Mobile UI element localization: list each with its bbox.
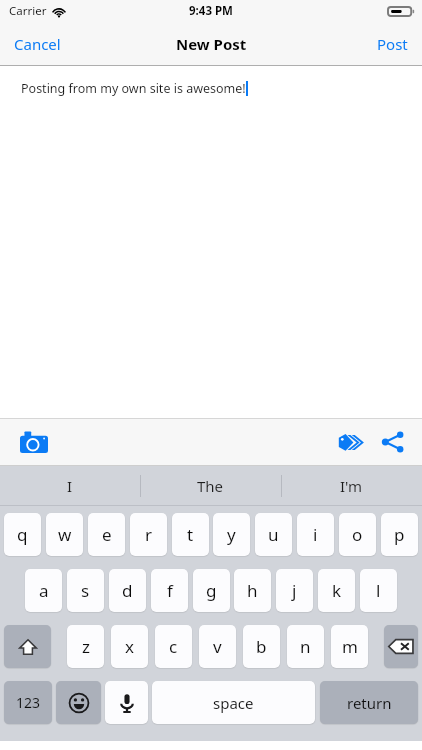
button[interactable]: l (360, 569, 397, 612)
button[interactable]: space (152, 681, 315, 724)
button[interactable]: z (67, 625, 104, 668)
button[interactable]: Dictation (105, 681, 148, 724)
staticText: d (122, 579, 133, 602)
button[interactable]: n (287, 625, 324, 668)
button[interactable]: Emoji (56, 681, 101, 724)
staticText: x (125, 635, 134, 658)
button[interactable]: c (155, 625, 192, 668)
staticText: s (81, 579, 90, 602)
button[interactable]: j (276, 569, 313, 612)
button[interactable]: b (243, 625, 280, 668)
button[interactable]: w (46, 513, 83, 556)
staticText: p (394, 523, 405, 546)
staticText: b (256, 635, 267, 658)
staticText: space (213, 693, 254, 713)
staticText: y (227, 523, 236, 546)
staticText: k (332, 579, 342, 602)
staticText: Posting from my own site is awesome! (21, 80, 246, 97)
button[interactable]: g (193, 569, 230, 612)
button[interactable]: Shift (4, 625, 51, 668)
staticText: a (39, 579, 49, 602)
staticText: g (206, 579, 217, 602)
staticText: New Post (176, 34, 247, 54)
button[interactable]: o (339, 513, 376, 556)
button[interactable]: x (111, 625, 148, 668)
staticText: e (102, 523, 112, 546)
staticText: q (17, 523, 28, 546)
button[interactable]: v (199, 625, 236, 668)
button[interactable]: Backspace (384, 625, 418, 668)
staticText: 123 (16, 693, 41, 712)
button[interactable]: 123 (4, 681, 52, 724)
button[interactable]: d (109, 569, 146, 612)
staticText: Post (377, 34, 408, 54)
button[interactable]: s (67, 569, 104, 612)
button[interactable]: Share (372, 421, 414, 463)
button[interactable]: m (331, 625, 368, 668)
staticText: c (169, 635, 178, 658)
button[interactable]: k (318, 569, 355, 612)
button[interactable]: Tags (330, 421, 372, 463)
staticText: l (376, 579, 381, 602)
button[interactable]: Posting from my own site is awesome! (0, 66, 422, 418)
button[interactable]: f (151, 569, 188, 612)
staticText: f (167, 579, 173, 602)
button[interactable]: return (320, 681, 418, 724)
button[interactable]: Add photo (12, 420, 56, 464)
staticText: o (352, 523, 363, 546)
button[interactable]: u (255, 513, 292, 556)
staticText: n (300, 635, 311, 658)
button[interactable]: I'm (281, 466, 422, 506)
staticText: r (145, 523, 153, 546)
button[interactable]: p (381, 513, 418, 556)
staticText: Cancel (14, 34, 61, 54)
staticText: i (313, 523, 318, 546)
button[interactable]: I (0, 466, 140, 506)
staticText: The (197, 476, 224, 496)
staticText: m (342, 635, 358, 658)
staticText: 9:43 PM (189, 3, 233, 19)
button[interactable]: y (213, 513, 250, 556)
button[interactable]: a (25, 569, 62, 612)
staticText: j (292, 579, 297, 602)
staticText: u (268, 523, 279, 546)
button[interactable]: t (172, 513, 209, 556)
staticText: z (82, 635, 90, 658)
staticText: v (213, 635, 222, 658)
button[interactable]: e (88, 513, 125, 556)
button[interactable]: i (297, 513, 334, 556)
button[interactable]: r (130, 513, 167, 556)
staticText: w (58, 523, 72, 546)
staticText: I (67, 476, 73, 496)
button[interactable]: Post (377, 22, 408, 66)
staticText: I'm (340, 476, 363, 496)
button[interactable]: Cancel (14, 22, 61, 66)
button[interactable]: q (4, 513, 41, 556)
staticText: return (347, 693, 392, 713)
staticText: h (247, 579, 258, 602)
button[interactable]: The (140, 466, 281, 506)
staticText: t (187, 523, 194, 546)
staticText: Carrier (9, 3, 47, 19)
button[interactable]: h (234, 569, 271, 612)
